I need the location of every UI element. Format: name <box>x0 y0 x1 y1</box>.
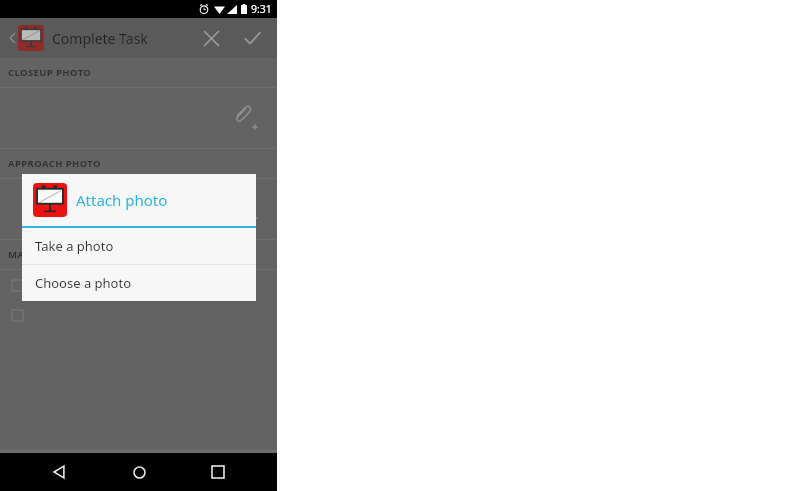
staticText: Choose a photo <box>35 274 132 292</box>
button[interactable]: Done <box>235 21 269 55</box>
button[interactable] <box>0 179 277 239</box>
button[interactable]: Home <box>119 453 159 491</box>
staticText: Attach photo <box>76 190 168 210</box>
staticText: APPROACH PHOTO <box>8 157 101 170</box>
button[interactable]: Cancel <box>194 21 228 55</box>
button[interactable]: Take a photo <box>22 228 256 264</box>
button[interactable]: Navigate up <box>10 25 44 51</box>
staticText: CLOSEUP PHOTO <box>8 66 92 79</box>
button[interactable] <box>0 270 277 300</box>
staticText: Take a photo <box>35 237 114 255</box>
button[interactable] <box>0 300 277 330</box>
button[interactable]: Back <box>39 453 79 491</box>
staticText: 9:31 <box>251 2 272 16</box>
button[interactable]: Recent apps <box>198 453 238 491</box>
staticText: MATERIALS USED <box>8 248 94 261</box>
staticText: Complete Task <box>52 29 148 48</box>
button[interactable]: Choose a photo <box>22 265 256 301</box>
